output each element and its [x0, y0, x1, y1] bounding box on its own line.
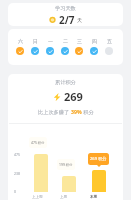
staticText: 本周 — [90, 195, 97, 199]
button[interactable]: 六 — [16, 38, 24, 55]
staticText: 475 — [14, 152, 21, 157]
staticText: 39% — [71, 108, 82, 115]
staticText: 199 积分 — [59, 162, 73, 167]
button[interactable] — [34, 154, 48, 192]
staticText: 2/7 — [59, 13, 75, 26]
staticText: 269 积分 — [90, 156, 107, 162]
staticText: 二 — [63, 38, 68, 44]
staticText: 0 — [14, 189, 17, 194]
button[interactable]: 一 — [46, 38, 54, 55]
staticText: 三 — [77, 38, 82, 44]
staticText: 天 — [77, 17, 82, 23]
staticText: 比上次多赚了 — [38, 108, 71, 115]
staticText: 四 — [92, 38, 97, 44]
button[interactable]: 二 — [61, 38, 69, 55]
staticText: 475 积分 — [31, 140, 45, 145]
staticText: 一 — [48, 38, 53, 44]
button[interactable]: 日 — [31, 38, 39, 55]
button[interactable]: 五 — [105, 38, 113, 55]
button[interactable]: 学习天数 — [8, 3, 123, 26]
staticText: 积分 — [82, 108, 94, 115]
staticText: 上周 — [60, 195, 67, 199]
button[interactable]: 三 — [75, 38, 83, 55]
staticText: 上上周 — [32, 195, 43, 199]
staticText: 238 — [14, 171, 21, 176]
button[interactable]: 475 积分 — [29, 137, 47, 148]
staticText: 日 — [33, 38, 38, 44]
button[interactable] — [92, 170, 106, 192]
staticText: 累计积分 — [55, 79, 76, 86]
button[interactable]: 199 积分 — [57, 159, 75, 170]
staticText: 六 — [18, 38, 23, 44]
staticText: 269 — [64, 89, 83, 104]
staticText: 学习天数 — [55, 5, 76, 12]
button[interactable]: 四 — [90, 38, 98, 55]
button[interactable] — [62, 176, 76, 192]
button[interactable]: 269 积分 — [88, 153, 109, 167]
staticText: 五 — [107, 38, 112, 44]
